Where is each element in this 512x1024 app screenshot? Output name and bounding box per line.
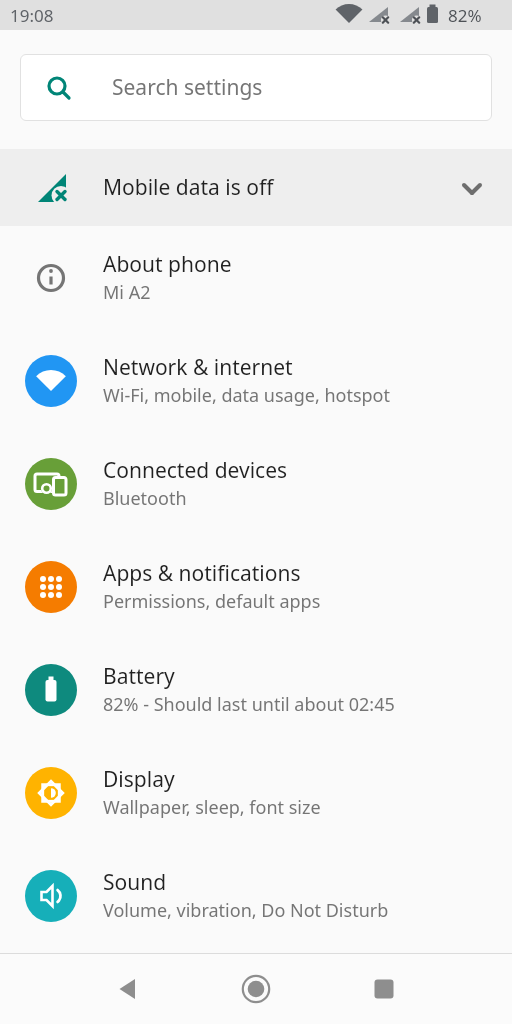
- button[interactable]: [320, 953, 448, 1024]
- staticText: Battery: [103, 662, 175, 691]
- button[interactable]: Apps & notifications: [0, 535, 512, 638]
- staticText: Volume, vibration, Do Not Disturb: [103, 898, 389, 923]
- button[interactable]: Search settings: [20, 54, 492, 121]
- button[interactable]: [192, 953, 320, 1024]
- staticText: Permissions, default apps: [103, 589, 321, 614]
- staticText: Display: [103, 765, 175, 794]
- staticText: Bluetooth: [103, 486, 187, 511]
- button[interactable]: Display: [0, 741, 512, 844]
- button[interactable]: Connected devices: [0, 432, 512, 535]
- staticText: Sound: [103, 868, 167, 897]
- button[interactable]: Mobile data is off: [0, 149, 512, 226]
- staticText: Connected devices: [103, 456, 288, 485]
- staticText: Search settings: [112, 73, 263, 102]
- button[interactable]: About phone: [0, 226, 512, 329]
- staticText: Wi-Fi, mobile, data usage, hotspot: [103, 383, 391, 408]
- staticText: Network & internet: [103, 353, 293, 382]
- button[interactable]: Network & internet: [0, 329, 512, 432]
- button[interactable]: Battery: [0, 638, 512, 741]
- staticText: Wallpaper, sleep, font size: [103, 795, 321, 820]
- staticText: About phone: [103, 250, 232, 279]
- staticText: Mobile data is off: [103, 173, 274, 202]
- button[interactable]: [64, 953, 192, 1024]
- button[interactable]: Sound: [0, 844, 512, 947]
- staticText: 19:08: [10, 4, 54, 27]
- staticText: Mi A2: [103, 280, 151, 305]
- staticText: 82% - Should last until about 02:45: [103, 692, 395, 717]
- staticText: 82%: [448, 4, 482, 27]
- staticText: Apps & notifications: [103, 559, 301, 588]
